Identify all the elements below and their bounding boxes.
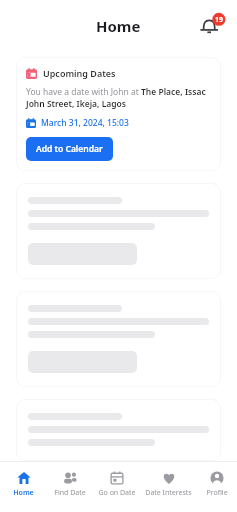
button[interactable]: Find Date <box>47 462 93 512</box>
button[interactable]: Profile <box>196 462 237 512</box>
button[interactable]: Notifications <box>198 12 226 40</box>
staticText: 19 <box>215 15 224 25</box>
button[interactable]: Upcoming Dates <box>16 57 221 171</box>
button[interactable] <box>16 183 221 279</box>
staticText: Home <box>13 488 34 498</box>
staticText: Upcoming Dates <box>43 67 116 79</box>
button[interactable]: Home <box>0 462 47 512</box>
button[interactable] <box>16 291 221 387</box>
staticText: You have a date with John at The Place, … <box>26 86 211 110</box>
staticText: March 31, 2024, 15:03 <box>41 117 129 129</box>
button[interactable] <box>16 399 221 461</box>
staticText: Profile <box>206 488 228 498</box>
button[interactable]: Add to Calendar <box>26 137 113 161</box>
button[interactable]: Go on Date <box>93 462 141 512</box>
button[interactable]: Date Interests <box>141 462 196 512</box>
staticText: Date Interests <box>145 488 192 498</box>
staticText: Add to Calendar <box>36 143 103 155</box>
staticText: Find Date <box>54 488 86 498</box>
staticText: Home <box>96 16 141 36</box>
staticText: Go on Date <box>98 488 136 498</box>
